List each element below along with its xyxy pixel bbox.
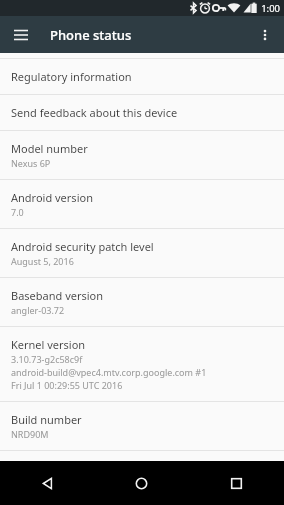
staticText: Model number <box>11 141 88 156</box>
staticText: Nexus 6P <box>11 157 51 169</box>
staticText: Send feedback about this device <box>11 105 178 120</box>
staticText: 7.0 <box>11 206 24 218</box>
button[interactable]: Send feedback about this device <box>0 95 284 130</box>
button[interactable]: More options <box>252 22 278 48</box>
button[interactable]: Home <box>94 461 189 505</box>
button[interactable]: Open navigation menu <box>8 22 34 48</box>
staticText: NRD90M <box>11 428 49 440</box>
button[interactable]: Baseband version <box>0 278 284 326</box>
staticText: Kernel version <box>11 337 86 352</box>
staticText: Baseband version <box>11 288 104 303</box>
staticText: Android security patch level <box>11 239 154 254</box>
staticText: 1:00 <box>261 2 280 15</box>
button[interactable]: Regulatory information <box>0 59 284 94</box>
staticText: 3.10.73-g2c58c9f <box>11 353 83 365</box>
staticText: angler-03.72 <box>11 304 65 316</box>
staticText: Regulatory information <box>11 69 132 84</box>
button[interactable]: Kernel version <box>0 327 284 401</box>
button[interactable]: Android version <box>0 180 284 228</box>
staticText: August 5, 2016 <box>11 255 74 267</box>
button[interactable]: Model number <box>0 131 284 179</box>
staticText: Fri Jul 1 00:29:55 UTC 2016 <box>11 379 123 391</box>
button[interactable]: Android security patch level <box>0 229 284 277</box>
staticText: Phone status <box>50 26 132 44</box>
button[interactable]: Back <box>0 461 94 505</box>
staticText: Android version <box>11 190 93 205</box>
staticText: android-build@vpec4.mtv.corp.google.com … <box>11 366 207 378</box>
staticText: Build number <box>11 412 82 427</box>
button[interactable]: Recent apps <box>189 461 284 505</box>
button[interactable]: Build number <box>0 402 284 450</box>
